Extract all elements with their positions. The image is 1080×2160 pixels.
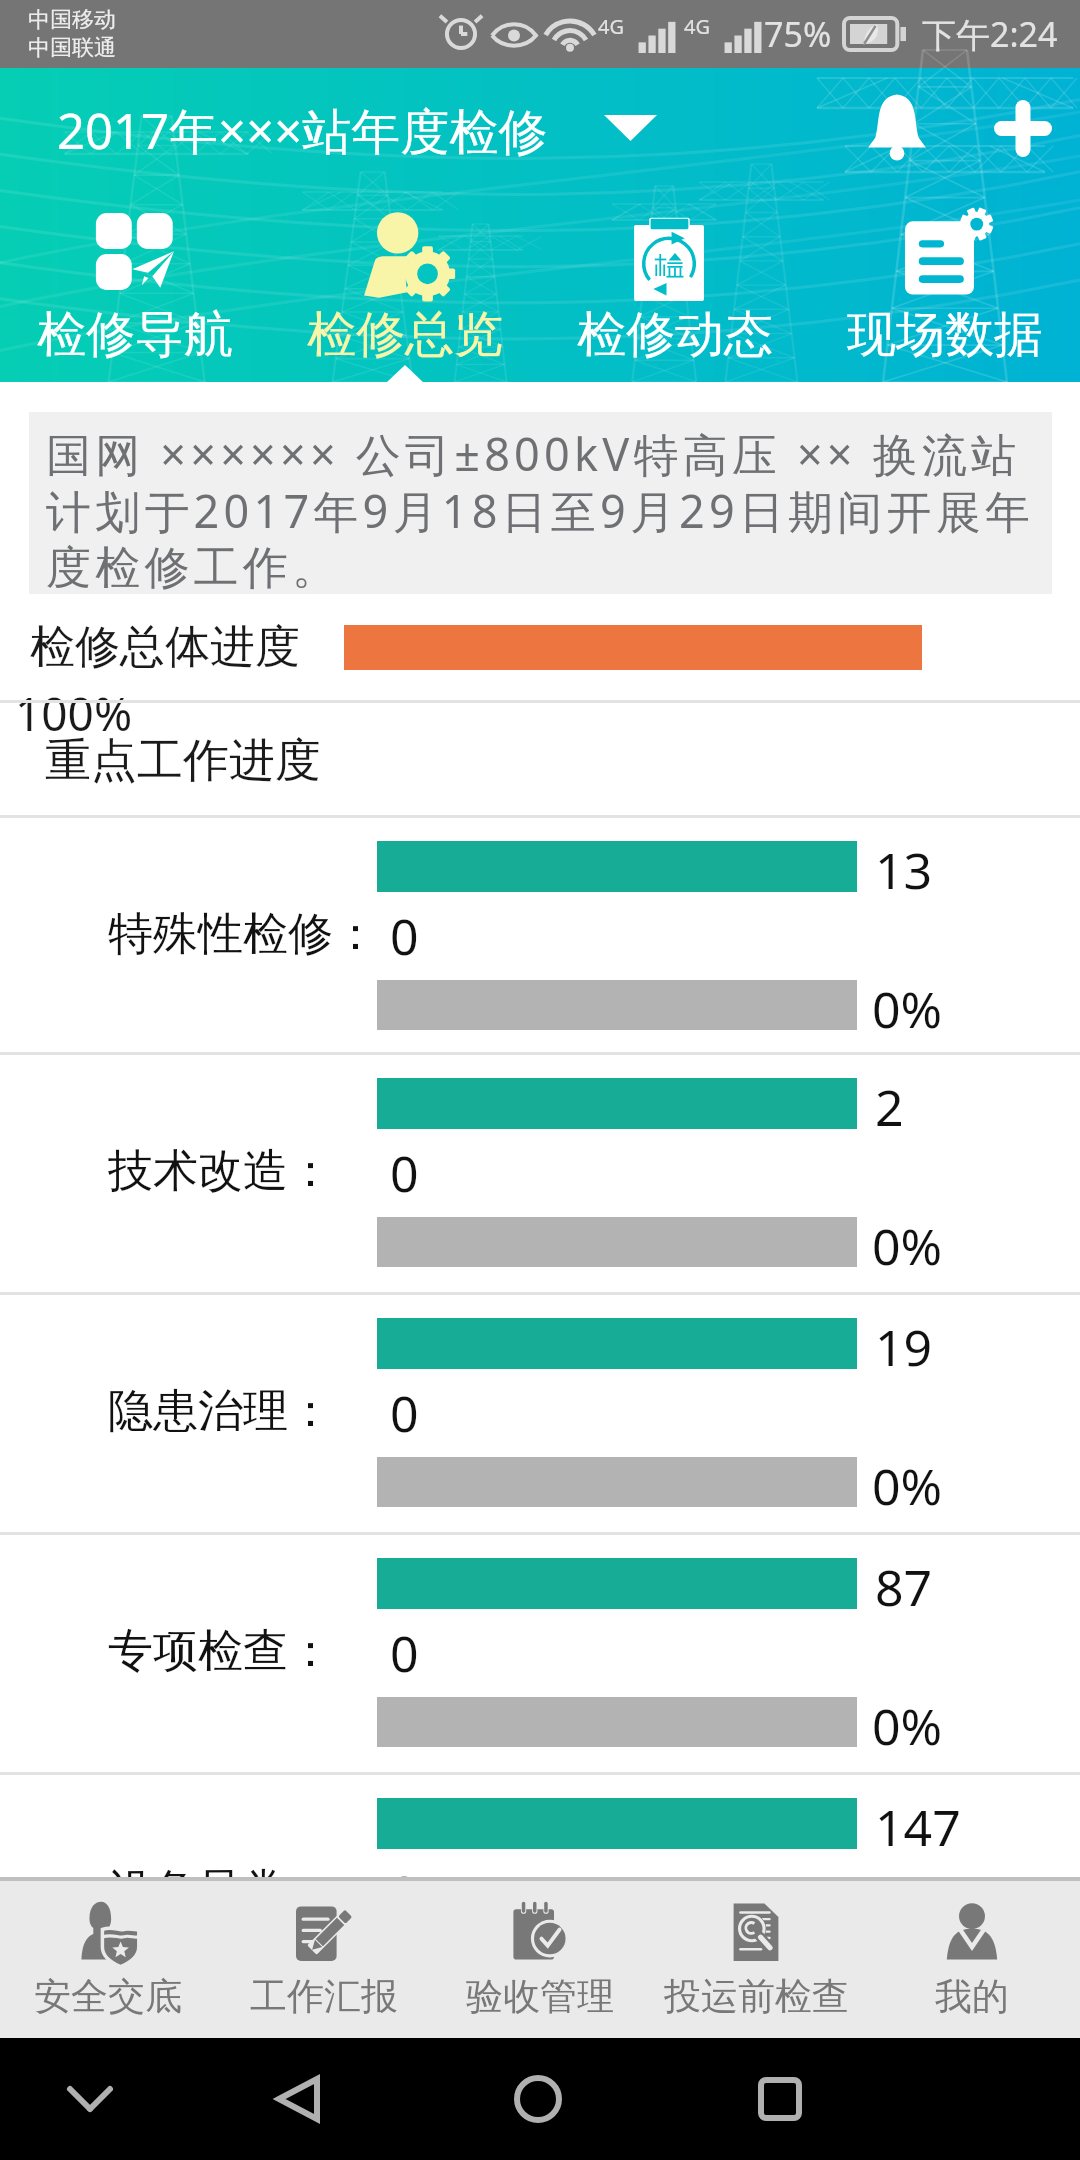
button[interactable]: 重点工作进度 [0, 703, 1080, 815]
staticText: 0% [872, 1212, 943, 1280]
button[interactable]: 投运前检查 [648, 1881, 864, 2038]
staticText: 13 [875, 836, 933, 904]
staticText: 100% [15, 682, 133, 745]
button[interactable]: 现场数据 [810, 188, 1080, 382]
staticText: 0 [390, 1379, 419, 1447]
staticText: 我的 [935, 1973, 1009, 2020]
staticText: 中国移动 [28, 6, 116, 34]
staticText: 0 [390, 1859, 419, 1927]
button[interactable]: Hide keyboard [50, 2059, 130, 2139]
button[interactable]: 我的 [864, 1881, 1080, 2038]
staticText: 19 [875, 1313, 933, 1381]
button[interactable]: 147 [0, 1775, 1080, 1877]
staticText: 0 [390, 902, 419, 970]
button[interactable]: Recent apps [740, 2059, 820, 2139]
button[interactable]: Notifications [847, 78, 947, 178]
button[interactable]: 验收管理 [432, 1881, 648, 2038]
button[interactable]: 检修动态 [540, 188, 810, 382]
staticText: 重点工作进度 [45, 732, 321, 790]
staticText: 87 [875, 1553, 933, 1621]
staticText: 验收管理 [466, 1973, 614, 2020]
staticText: 147 [875, 1793, 961, 1861]
button[interactable]: Back [258, 2059, 338, 2139]
button[interactable]: 工作汇报 [216, 1881, 432, 2038]
button[interactable]: Select project [590, 88, 670, 168]
button[interactable]: 19 [0, 1295, 1080, 1532]
staticText: 检修导航 [37, 304, 233, 366]
staticText: 检修动态 [577, 304, 773, 366]
staticText: 隐患治理： [108, 1383, 333, 1440]
staticText: 0 [390, 1619, 419, 1687]
staticText: 0% [872, 975, 943, 1043]
staticText: 特殊性检修： [108, 906, 378, 963]
staticText: 2 [875, 1073, 904, 1141]
staticText: 0% [872, 1452, 943, 1520]
button[interactable]: Add [973, 78, 1073, 178]
button[interactable]: 安全交底 [0, 1881, 216, 2038]
button[interactable]: 检修导航 [0, 188, 270, 382]
staticText: 设备异常： [108, 1863, 333, 1920]
button[interactable]: 13 [0, 818, 1080, 1052]
button[interactable]: Home [498, 2059, 578, 2139]
staticText: 0% [872, 1692, 943, 1760]
staticText: 75% [764, 11, 832, 57]
staticText: 4G [684, 13, 710, 40]
staticText: 0% [872, 1932, 943, 2000]
staticText: 国网 ×××××× 公司±800kV特高压 ×× 换流站计划于2017年9月18… [46, 423, 1046, 594]
button[interactable]: 检修总体进度 [0, 594, 1080, 700]
staticText: 2017年×××站年度检修 [57, 97, 548, 164]
staticText: 投运前检查 [664, 1973, 849, 2020]
staticText: 技术改造： [108, 1143, 333, 1200]
staticText: 中国联通 [28, 34, 116, 62]
button[interactable]: 87 [0, 1535, 1080, 1772]
staticText: 安全交底 [34, 1973, 182, 2020]
staticText: 4G [598, 13, 624, 40]
button[interactable]: 检修总览 [270, 188, 540, 382]
staticText: 工作汇报 [250, 1973, 398, 2020]
staticText: 检修总览 [307, 304, 503, 366]
staticText: 下午2:24 [922, 11, 1058, 57]
staticText: 0 [390, 1139, 419, 1207]
staticText: 专项检查： [108, 1623, 333, 1680]
staticText: 现场数据 [847, 304, 1043, 366]
staticText: 检修总体进度 [30, 619, 300, 676]
button[interactable]: 2 [0, 1055, 1080, 1292]
